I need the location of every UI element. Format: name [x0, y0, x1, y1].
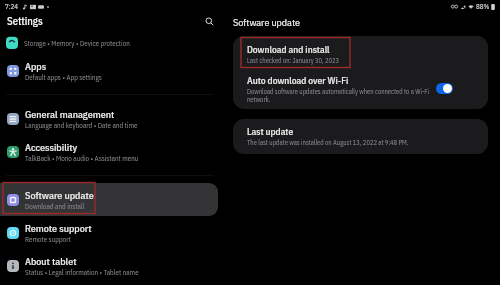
button[interactable]: Last update	[233, 119, 488, 154]
staticText: Download and install	[247, 43, 330, 55]
staticText: Software update	[25, 189, 94, 202]
staticText: General management	[25, 108, 115, 121]
button[interactable]: Software update	[0, 183, 218, 216]
staticText: Storage • Memory • Device protection	[24, 39, 130, 48]
staticText: The last update was installed on August …	[247, 138, 409, 146]
staticText: Remote support	[25, 235, 71, 244]
staticText: Remote support	[25, 222, 92, 235]
staticText: Last checked on: January 30, 2023	[247, 56, 340, 64]
staticText: Software update	[233, 16, 300, 29]
button[interactable]: Download and install	[233, 36, 488, 67]
staticText: Auto download over Wi-Fi	[247, 74, 349, 86]
staticText: 7:24	[5, 2, 19, 11]
staticText: Status • Legal information • Tablet name	[25, 268, 139, 277]
button[interactable]: Storage • Memory • Device protection	[0, 33, 230, 54]
staticText: Accessibility	[25, 141, 78, 154]
staticText: 88%	[476, 2, 490, 11]
button[interactable]: Auto download over Wi-Fi	[233, 67, 488, 109]
button[interactable]: Apps	[0, 54, 218, 87]
staticText: About tablet	[25, 255, 77, 268]
button[interactable]: Remote support	[0, 216, 218, 249]
staticText: Settings	[7, 14, 43, 28]
staticText: Apps	[25, 60, 47, 73]
button[interactable]: About tablet	[0, 249, 218, 282]
button[interactable]: Accessibility	[0, 135, 218, 168]
button[interactable]: Search	[203, 15, 216, 28]
button[interactable]: General management	[0, 102, 218, 135]
staticText: TalkBack • Mono audio • Assistant menu	[25, 154, 139, 163]
staticText: Download and install	[25, 202, 85, 211]
staticText: Download software updates automatically …	[247, 87, 434, 103]
staticText: Default apps • App settings	[25, 73, 102, 82]
staticText: Last update	[247, 125, 294, 137]
staticText: Language and keyboard • Date and time	[25, 121, 138, 130]
